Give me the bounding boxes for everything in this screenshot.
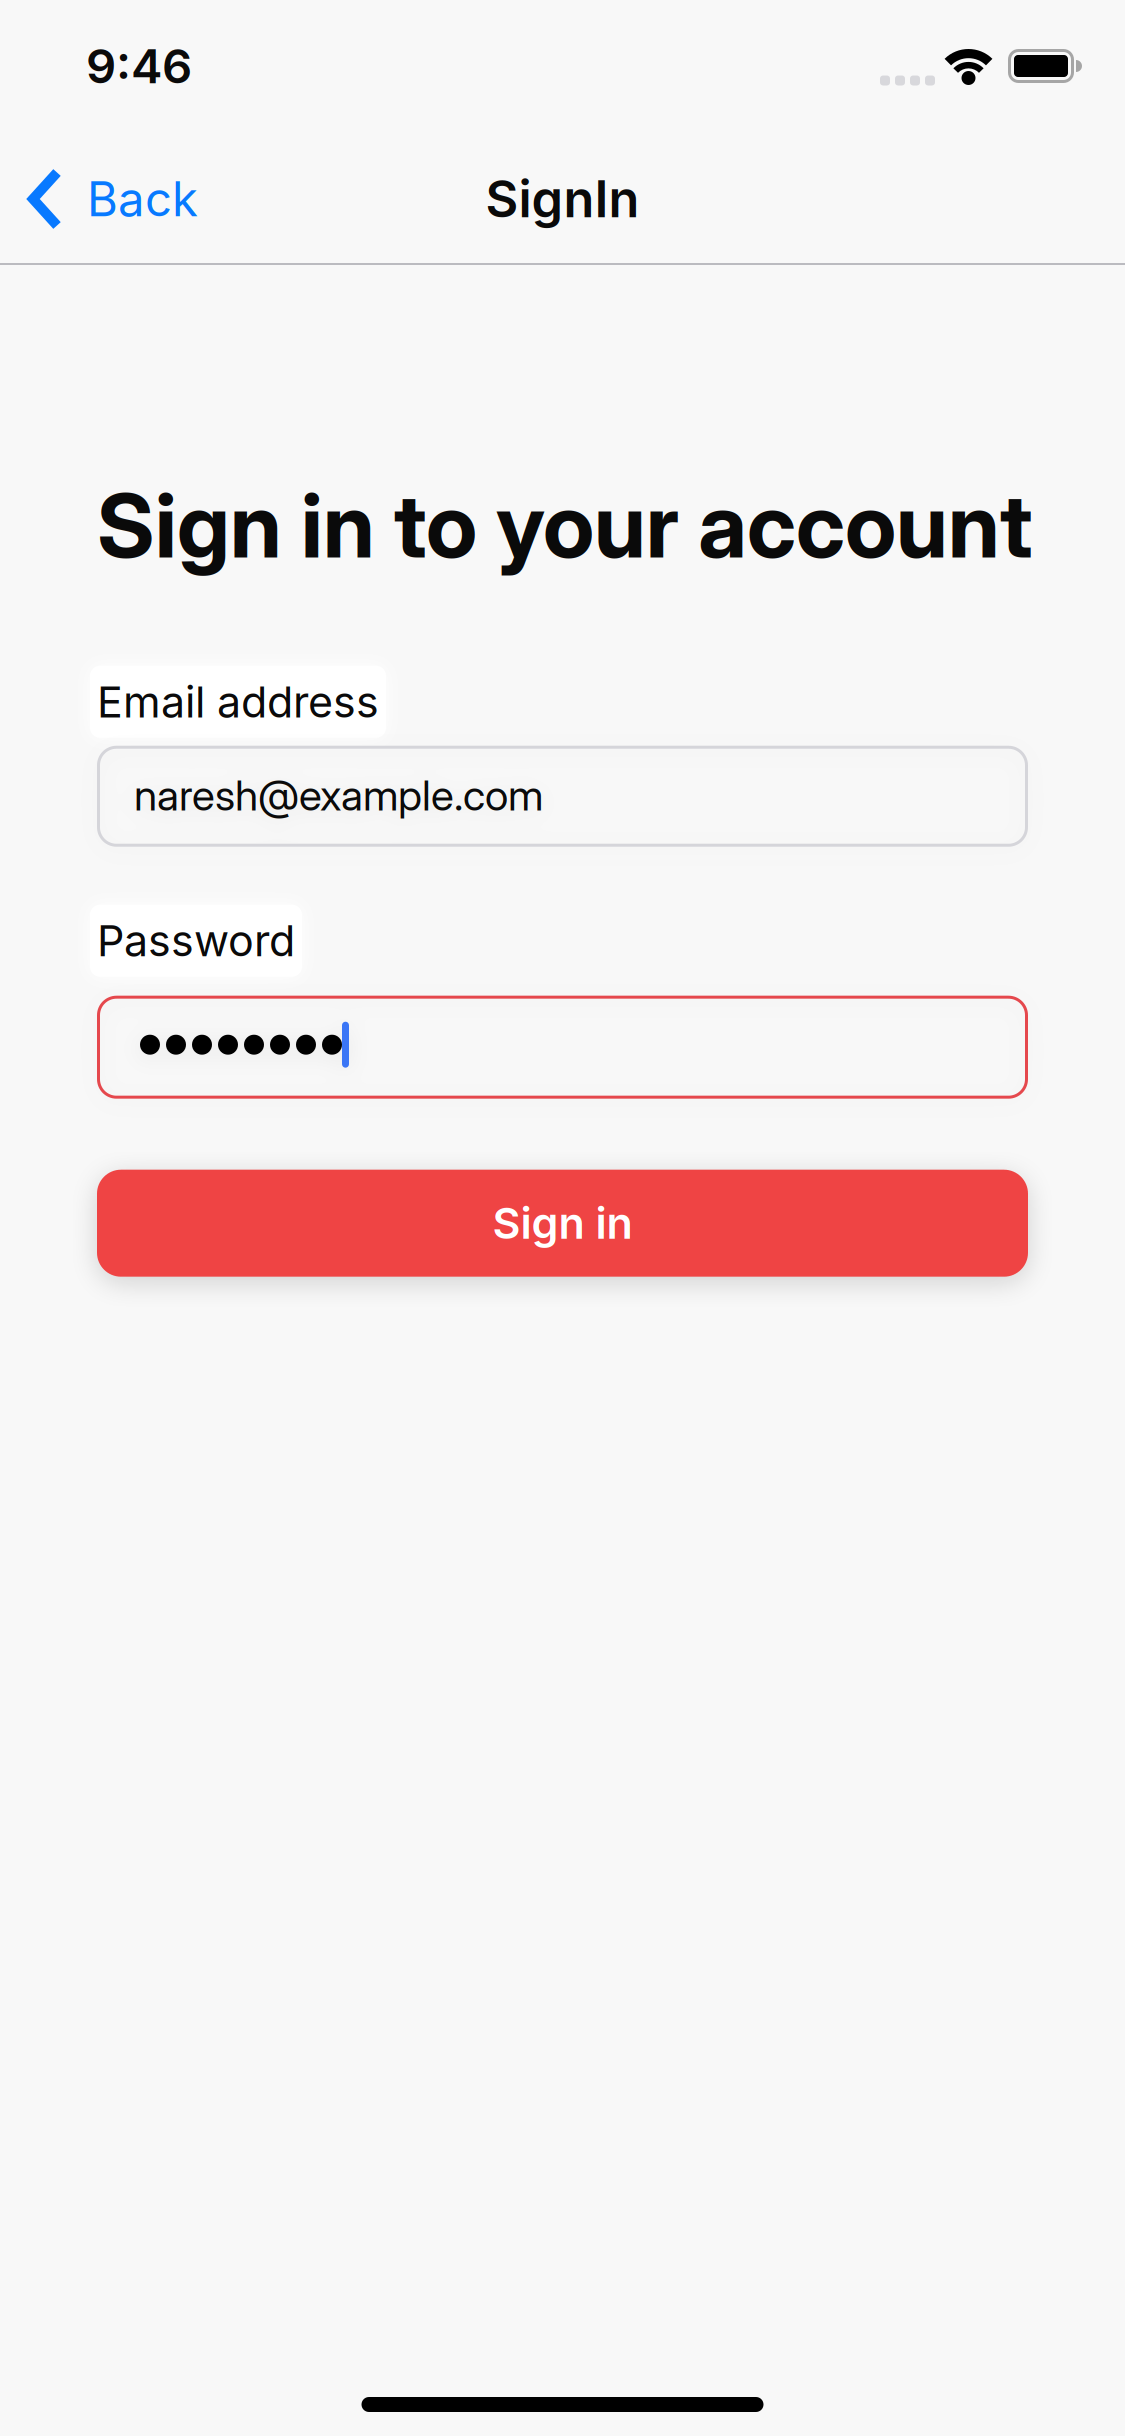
staticText: 9:46 bbox=[86, 37, 192, 94]
button[interactable]: Back bbox=[0, 170, 198, 227]
button[interactable] bbox=[97, 996, 1028, 1099]
staticText: Back bbox=[87, 170, 198, 227]
staticText: Sign in to your account bbox=[97, 472, 1033, 579]
button[interactable]: Sign in bbox=[97, 1170, 1028, 1277]
staticText: Sign in bbox=[492, 1197, 632, 1249]
staticText: Email address bbox=[97, 676, 379, 728]
staticText: naresh@example.com bbox=[134, 770, 543, 821]
staticText: SignIn bbox=[485, 168, 639, 229]
staticText: Password bbox=[97, 915, 295, 967]
button[interactable]: naresh@example.com bbox=[97, 746, 1028, 847]
